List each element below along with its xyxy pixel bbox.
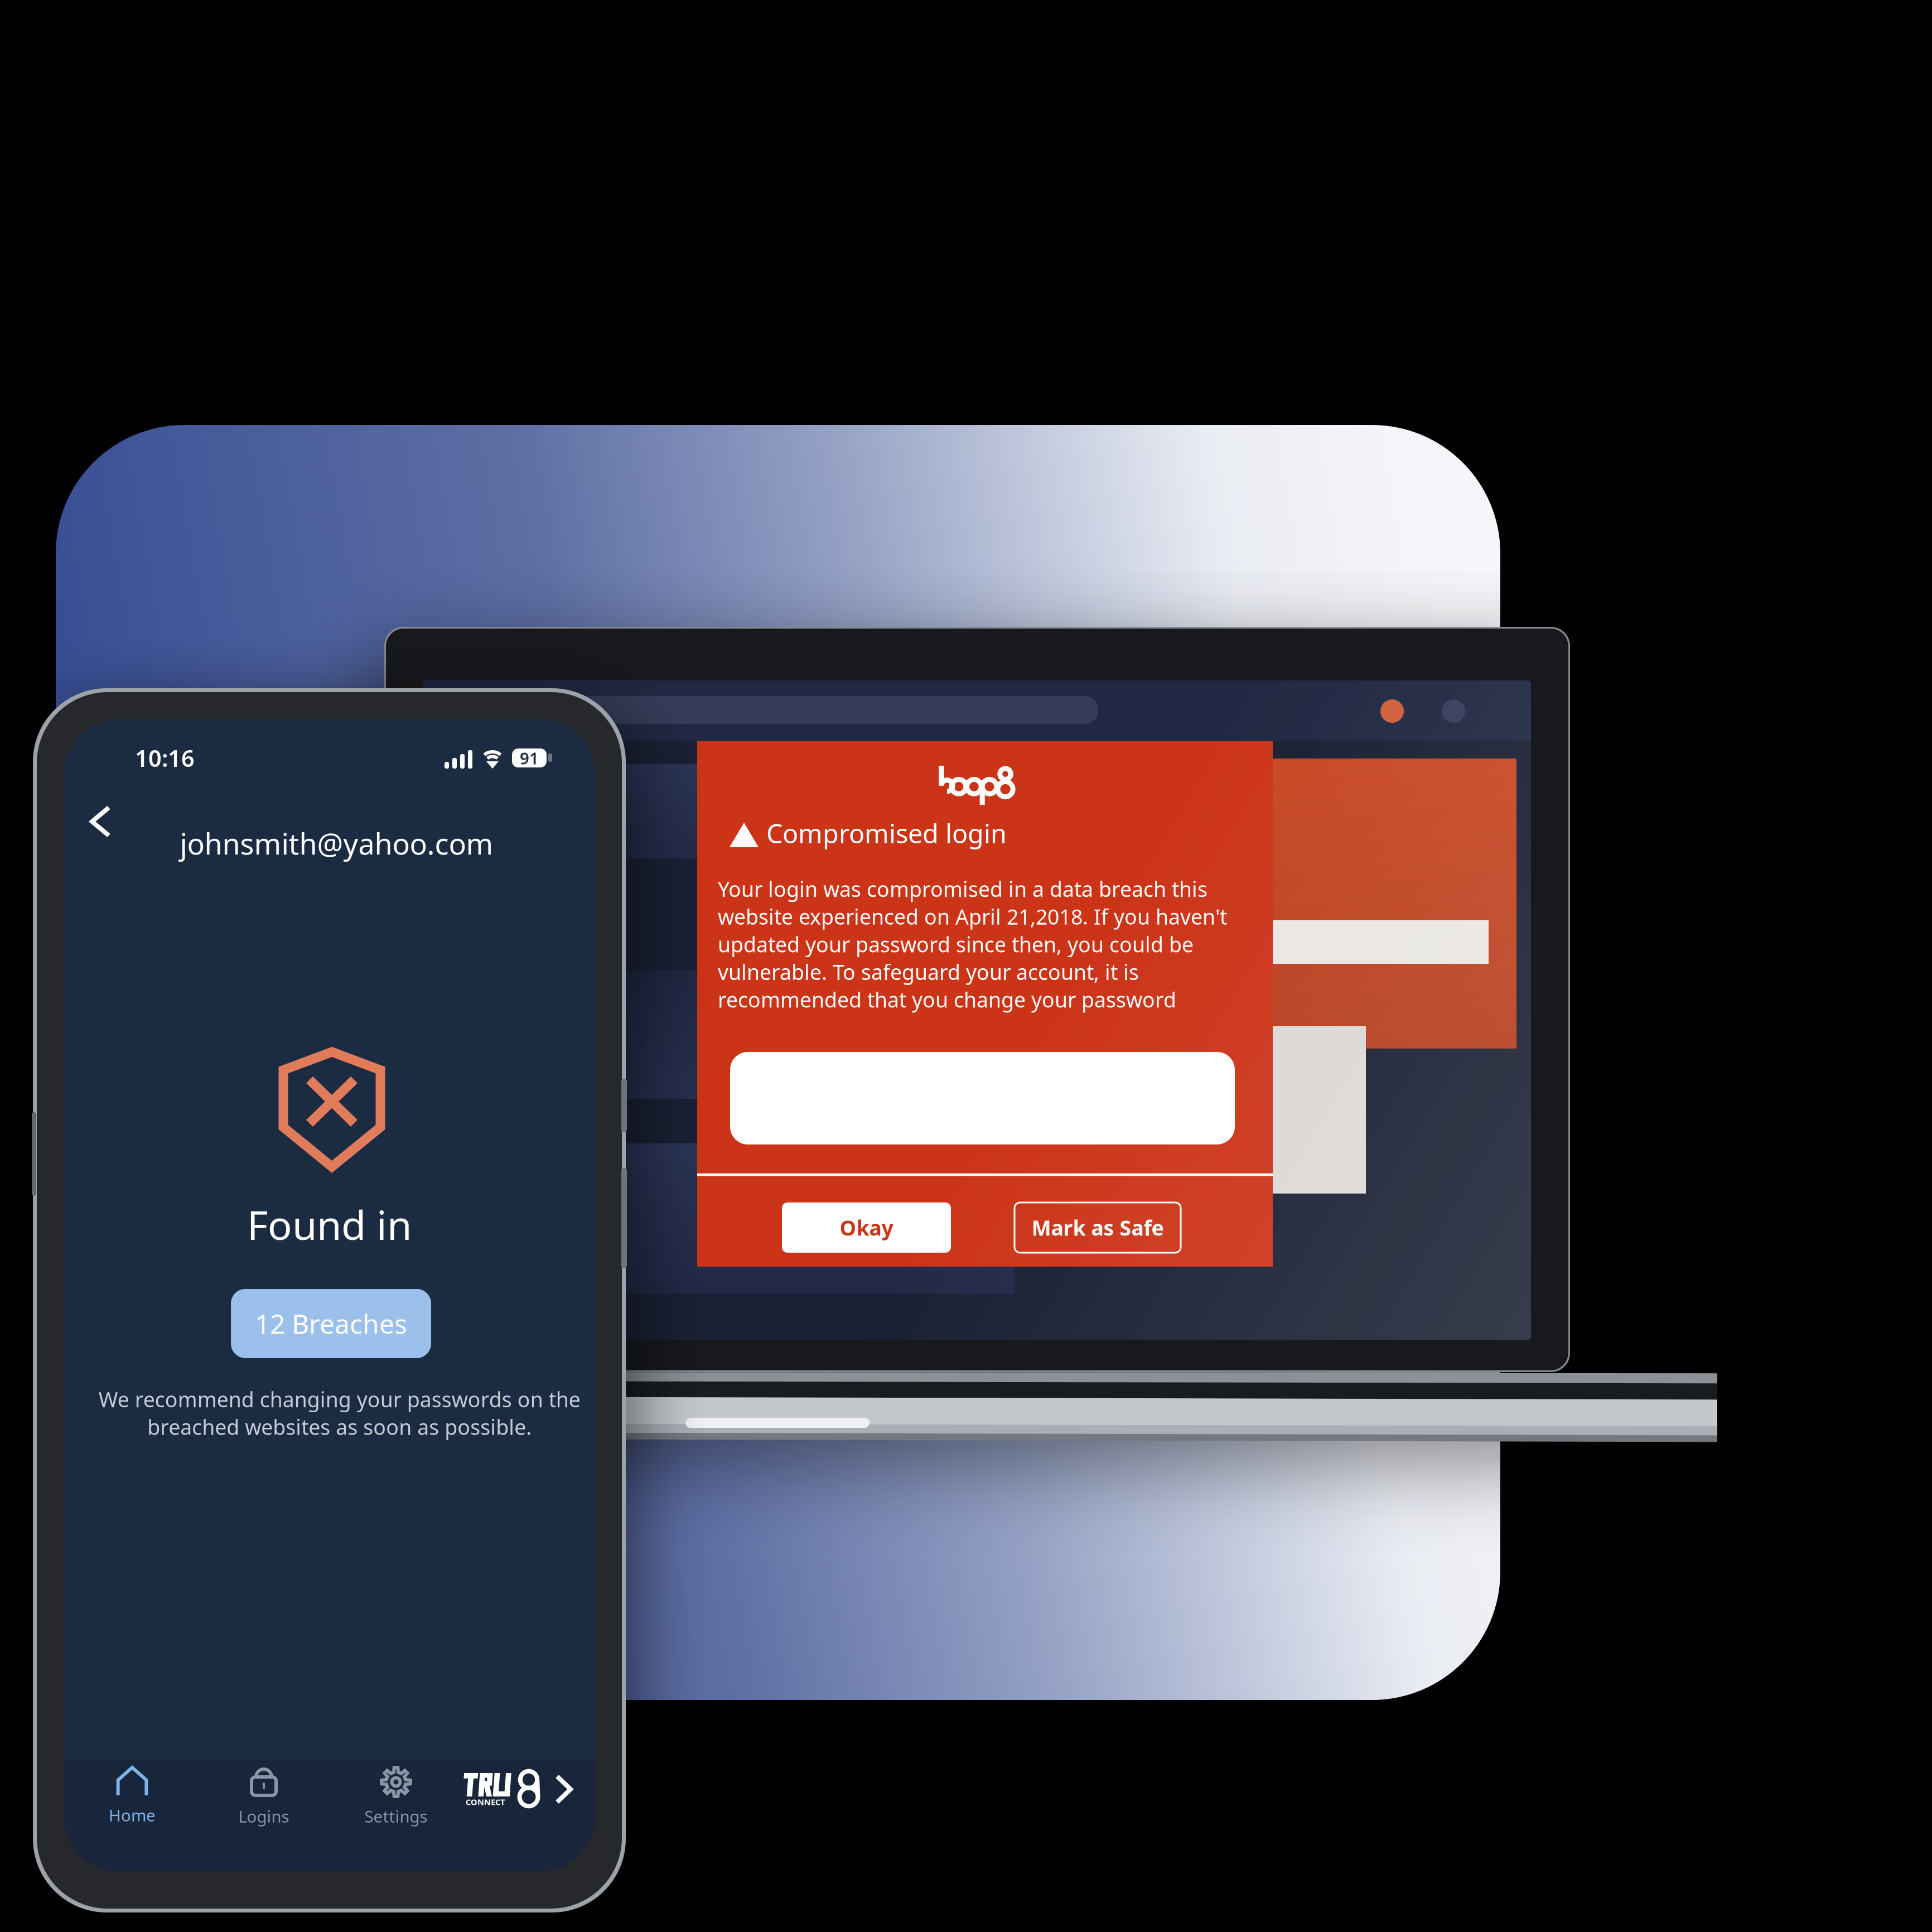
staticText: Found in [247, 1198, 412, 1251]
staticText: Mark as Safe [1032, 1214, 1164, 1241]
staticText: Okay [840, 1214, 893, 1241]
button[interactable]: Okay [697, 741, 1273, 1267]
staticText: Settings [364, 1805, 428, 1827]
button[interactable]: Home [64, 1760, 595, 1871]
staticText: Compromised login [766, 816, 1007, 851]
button[interactable]: Mark as Safe [697, 741, 1273, 1267]
staticText: Home [109, 1804, 156, 1826]
staticText: Logins [238, 1805, 289, 1827]
staticText: johnsmith@yahoo.com [180, 824, 493, 863]
button[interactable]: Settings [64, 1760, 595, 1871]
button[interactable]: Back [64, 719, 595, 1871]
staticText: We recommend changing your passwords on … [98, 1385, 580, 1441]
staticText: 10:16 [135, 743, 195, 773]
staticText: 12 Breaches [255, 1306, 407, 1341]
staticText: 91 [520, 747, 539, 769]
button[interactable]: 12 Breaches [64, 719, 595, 1871]
staticText: CONNECT [466, 1796, 505, 1807]
staticText: Your login was compromised in a data bre… [718, 875, 1227, 1013]
button[interactable]: TRU Connect [64, 1760, 595, 1871]
button[interactable]: Logins [64, 1760, 595, 1871]
